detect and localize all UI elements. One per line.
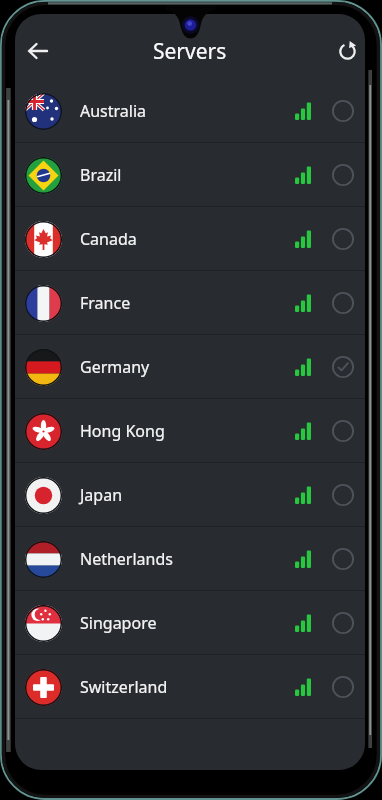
staticText: Singapore bbox=[80, 612, 157, 634]
staticText: Germany bbox=[80, 356, 150, 378]
button[interactable]: Germany bbox=[15, 335, 365, 399]
button[interactable]: France bbox=[15, 271, 365, 335]
staticText: Servers bbox=[153, 37, 227, 66]
staticText: Japan bbox=[80, 484, 123, 506]
button[interactable]: Hong Kong bbox=[15, 399, 365, 463]
staticText: Brazil bbox=[80, 164, 122, 186]
button[interactable]: Switzerland bbox=[15, 655, 365, 719]
staticText: Hong Kong bbox=[80, 420, 165, 442]
button[interactable]: Canada bbox=[15, 207, 365, 271]
button[interactable] bbox=[329, 33, 365, 69]
staticText: France bbox=[80, 292, 131, 314]
button[interactable]: Brazil bbox=[15, 143, 365, 207]
button[interactable] bbox=[19, 33, 55, 69]
button[interactable]: Australia bbox=[15, 79, 365, 143]
button[interactable]: Singapore bbox=[15, 591, 365, 655]
staticText: Australia bbox=[80, 100, 147, 122]
button[interactable]: Japan bbox=[15, 463, 365, 527]
staticText: Netherlands bbox=[80, 548, 173, 570]
staticText: Canada bbox=[80, 228, 137, 250]
staticText: Switzerland bbox=[80, 676, 168, 698]
button[interactable]: Netherlands bbox=[15, 527, 365, 591]
